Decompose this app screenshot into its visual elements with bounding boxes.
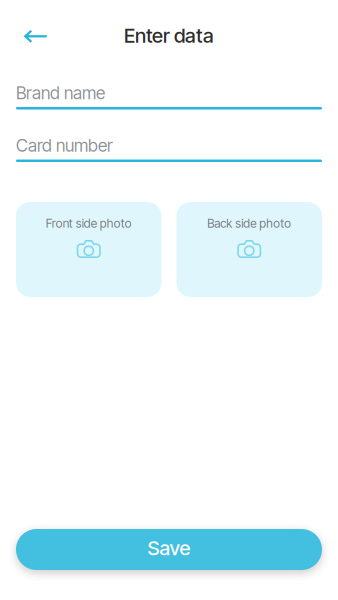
button[interactable]: Back [0, 17, 62, 55]
button[interactable]: Save [16, 529, 322, 570]
button[interactable]: Card number [16, 137, 322, 162]
staticText: Card number [16, 135, 113, 156]
staticText: Back side photo [207, 216, 291, 231]
staticText: Save [147, 536, 190, 560]
staticText: Front side photo [46, 216, 132, 231]
staticText: Enter data [124, 23, 214, 48]
button[interactable]: Brand name [16, 85, 322, 109]
button[interactable]: Back side photo [176, 202, 322, 297]
button[interactable]: Front side photo [16, 202, 161, 297]
staticText: Brand name [16, 82, 105, 103]
